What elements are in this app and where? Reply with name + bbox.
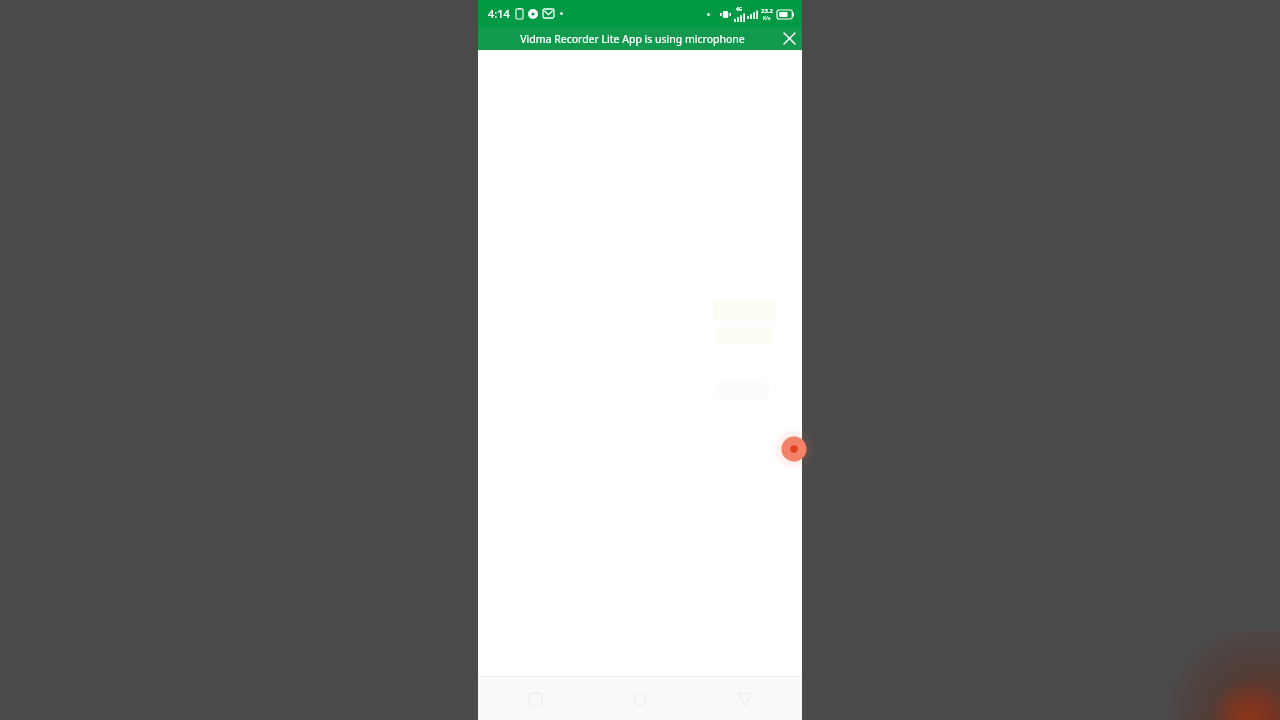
staticText: 4:14: [488, 6, 510, 21]
staticText: 4G: [736, 6, 743, 13]
staticText: 23.2: [761, 7, 773, 15]
staticText: K/s: [763, 15, 771, 22]
button[interactable]: Record: [772, 427, 816, 471]
button[interactable]: Close microphone notice: [776, 27, 802, 50]
staticText: Vidma Recorder Lite App is using microph…: [520, 32, 745, 46]
